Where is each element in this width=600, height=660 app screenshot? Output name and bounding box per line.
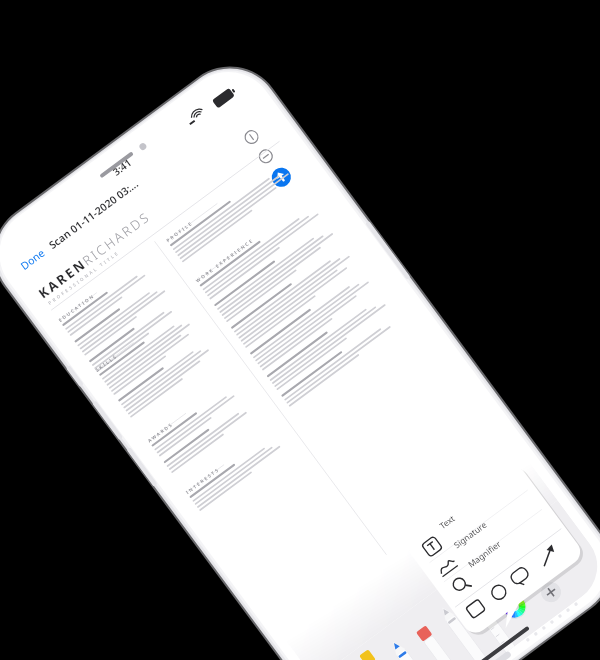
staticText: KAREN [35,254,90,302]
staticText: Text [437,512,457,531]
staticText: Signature [451,518,489,550]
staticText: EDUCATION [57,292,96,323]
staticText: RICHARDS [79,207,154,269]
button[interactable]: Text [410,458,529,554]
staticText: Scan 01-11-2020 03:... [46,176,141,252]
staticText: 3:41 [110,155,134,179]
staticText: PROFILE [165,219,194,243]
staticText: AWARDS [146,420,175,444]
staticText: Done [18,245,48,273]
button[interactable]: Signature [424,477,543,573]
button[interactable]: Magnifier [438,496,558,592]
staticText: PROFESSIONAL TITLE [47,249,121,306]
staticText: INTERESTS [184,466,221,495]
staticText: SKILLS [94,353,119,373]
button[interactable]: Done [18,244,51,274]
staticText: WORK EXPERIENCE [195,236,255,284]
staticText: Magnifier [466,538,503,570]
